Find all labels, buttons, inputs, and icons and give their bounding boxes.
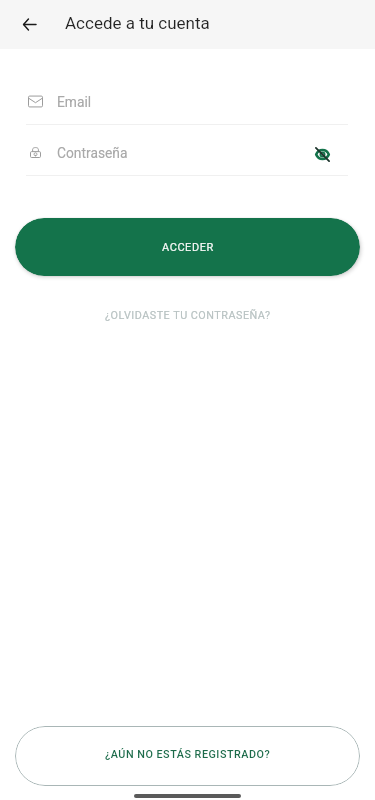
button[interactable]: ¿OLVIDASTE TU CONTRASEÑA? — [97, 306, 279, 325]
button[interactable]: ACCEDER — [15, 218, 360, 276]
staticText: ACCEDER — [162, 241, 214, 254]
button[interactable]: Toggle password visibility — [309, 143, 335, 165]
staticText: Contraseña — [57, 145, 128, 161]
staticText: Email — [57, 94, 92, 110]
button[interactable]: Back — [9, 5, 49, 45]
staticText: ¿AÚN NO ESTÁS REGISTRADO? — [105, 748, 271, 761]
staticText: Accede a tu cuenta — [65, 13, 210, 33]
staticText: ¿OLVIDASTE TU CONTRASEÑA? — [105, 309, 271, 322]
button[interactable]: ¿AÚN NO ESTÁS REGISTRADO? — [15, 726, 360, 786]
